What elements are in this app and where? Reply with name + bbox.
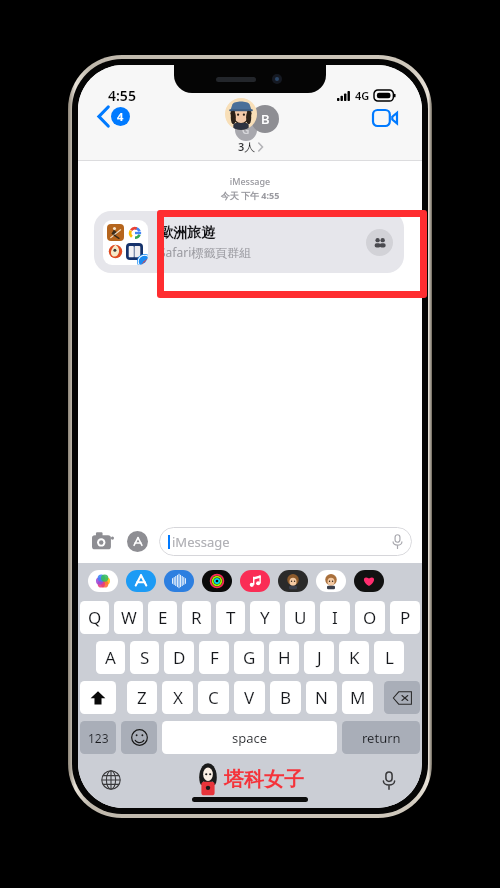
button[interactable]: V xyxy=(234,681,265,714)
staticText: N xyxy=(315,686,328,709)
button[interactable]: App xyxy=(88,570,118,592)
button[interactable]: P xyxy=(390,601,420,634)
button[interactable]: Dictation xyxy=(376,767,402,793)
button[interactable]: Emoji xyxy=(121,721,157,754)
button[interactable]: Shift xyxy=(80,681,116,714)
button[interactable]: I xyxy=(320,601,350,634)
staticText: I xyxy=(332,606,338,629)
button[interactable]: Change keyboard xyxy=(98,767,124,793)
staticText: space xyxy=(232,729,268,747)
staticText: 4G xyxy=(355,88,370,103)
button[interactable]: X xyxy=(162,681,193,714)
staticText: 今天 下午 4:55 xyxy=(78,189,422,201)
button[interactable]: D xyxy=(164,641,194,674)
button[interactable]: App xyxy=(354,570,384,592)
staticText: B xyxy=(280,686,292,709)
staticText: B xyxy=(261,110,270,128)
staticText: T xyxy=(226,606,236,629)
staticText: Z xyxy=(137,686,147,709)
staticText: G xyxy=(243,646,256,669)
button[interactable]: G xyxy=(234,641,264,674)
staticText: E xyxy=(158,606,168,629)
button[interactable]: App xyxy=(164,570,194,592)
staticText: R xyxy=(191,606,202,629)
button[interactable]: K xyxy=(339,641,369,674)
button[interactable]: J xyxy=(304,641,334,674)
staticText: C xyxy=(208,686,219,709)
button[interactable]: A xyxy=(96,641,125,674)
button[interactable]: App xyxy=(240,570,270,592)
button[interactable]: App xyxy=(316,570,346,592)
button[interactable]: Q xyxy=(80,601,109,634)
staticText: 123 xyxy=(88,730,109,746)
button[interactable]: W xyxy=(114,601,143,634)
button[interactable]: App xyxy=(202,570,232,592)
staticText: 歐洲旅遊 xyxy=(159,224,215,242)
staticText: X xyxy=(173,686,183,709)
button[interactable]: Apps xyxy=(122,526,152,556)
staticText: iMessage xyxy=(172,533,230,551)
staticText: 塔科女子 xyxy=(224,767,304,792)
staticText: 4 xyxy=(117,109,124,124)
button[interactable]: iMessage xyxy=(159,527,412,556)
button[interactable]: Z xyxy=(127,681,157,714)
button[interactable]: space xyxy=(162,721,337,754)
staticText: return xyxy=(362,729,401,747)
staticText: A xyxy=(105,646,116,669)
staticText: Q xyxy=(88,606,102,629)
button[interactable]: O xyxy=(355,601,385,634)
button[interactable]: R xyxy=(182,601,211,634)
button[interactable]: L xyxy=(374,641,404,674)
staticText: iMessage xyxy=(78,175,422,187)
button[interactable]: Back xyxy=(96,105,132,128)
staticText: M xyxy=(350,686,366,709)
button[interactable]: E xyxy=(148,601,177,634)
button[interactable]: T xyxy=(216,601,245,634)
button[interactable]: Y xyxy=(250,601,280,634)
staticText: 3人 xyxy=(238,139,256,154)
staticText: O xyxy=(363,606,377,629)
staticText: L xyxy=(385,646,394,669)
staticText: U xyxy=(294,606,307,629)
button[interactable]: M xyxy=(342,681,373,714)
button[interactable]: U xyxy=(285,601,315,634)
staticText: P xyxy=(400,606,411,629)
button[interactable]: 3人 xyxy=(234,138,267,155)
button[interactable]: App xyxy=(126,570,156,592)
staticText: 4:55 xyxy=(108,86,136,105)
button[interactable]: FaceTime xyxy=(370,107,400,129)
button[interactable]: App xyxy=(278,570,308,592)
staticText: Safari標籤頁群組 xyxy=(159,244,252,260)
button[interactable]: 123 xyxy=(80,721,116,754)
staticText: K xyxy=(349,646,360,669)
button[interactable]: C xyxy=(198,681,229,714)
button[interactable]: return xyxy=(342,721,420,754)
staticText: H xyxy=(278,646,291,669)
button[interactable]: Delete xyxy=(384,681,420,714)
staticText: F xyxy=(210,646,219,669)
button[interactable]: H xyxy=(269,641,299,674)
staticText: W xyxy=(121,606,137,629)
button[interactable]: S xyxy=(130,641,159,674)
button[interactable]: B xyxy=(270,681,301,714)
button[interactable]: Camera xyxy=(88,526,118,556)
button[interactable]: F xyxy=(199,641,229,674)
button[interactable]: 歐洲旅遊 xyxy=(94,211,404,273)
staticText: Y xyxy=(260,606,270,629)
staticText: G xyxy=(242,123,250,137)
staticText: S xyxy=(140,646,150,669)
staticText: D xyxy=(173,646,186,669)
button[interactable]: N xyxy=(306,681,337,714)
staticText: V xyxy=(244,686,255,709)
staticText: J xyxy=(317,646,322,669)
